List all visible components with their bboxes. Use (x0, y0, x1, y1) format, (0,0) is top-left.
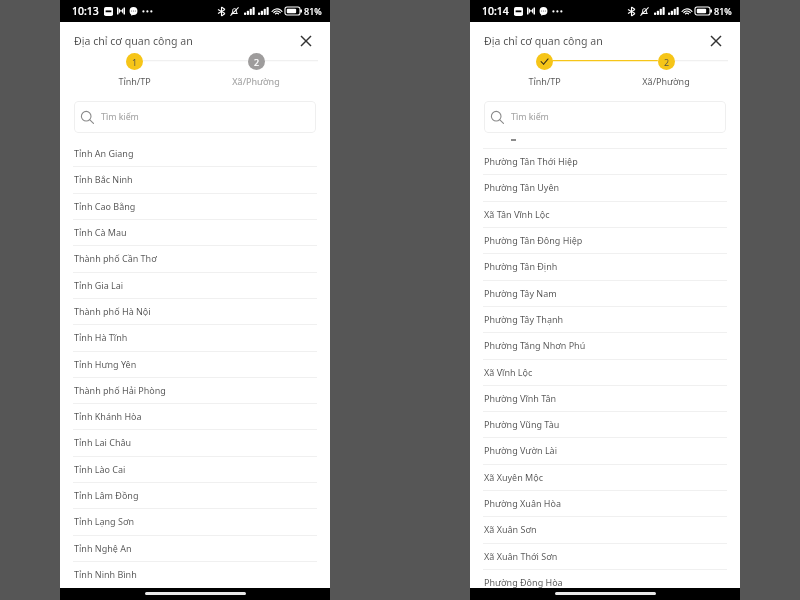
button[interactable]: Tỉnh Ninh Bình (60, 561, 330, 587)
button[interactable]: Xã Xuân Thới Sơn (470, 543, 740, 569)
button[interactable]: Phường Tây Nam (470, 280, 740, 306)
button[interactable]: Tỉnh Lạng Sơn (60, 508, 330, 534)
staticText: Địa chỉ cơ quan công an (74, 34, 193, 48)
staticText: Xã Tân Vĩnh Lộc (484, 208, 550, 220)
button[interactable]: Thành phố Hải Phòng (60, 377, 330, 403)
button[interactable]: Tỉnh Cà Mau (60, 219, 330, 245)
button[interactable]: Phường Tân Phú (470, 138, 740, 148)
staticText: Tìm kiếm (101, 111, 139, 123)
staticText: Xã Xuân Sơn (484, 523, 537, 535)
button[interactable]: Tỉnh Lâm Đồng (60, 482, 330, 508)
staticText: Tỉnh Nghệ An (74, 542, 132, 554)
staticText: Tỉnh Lạng Sơn (74, 515, 135, 527)
staticText: Phường Tân Thới Hiệp (484, 155, 578, 167)
staticText: Tỉnh Ninh Bình (74, 568, 137, 580)
staticText: Xã/Phường (642, 75, 690, 87)
button[interactable]: Tỉnh Hà Tĩnh (60, 324, 330, 350)
staticText: 81% (714, 5, 732, 17)
staticText: Thành phố Hải Phòng (74, 384, 166, 396)
button[interactable]: 2 (628, 53, 704, 87)
staticText: Tỉnh Gia Lai (74, 279, 124, 291)
staticText: 1 (132, 56, 138, 68)
staticText: Tỉnh/TP (118, 75, 151, 87)
button[interactable]: Phường Xuân Hòa (470, 490, 740, 516)
button[interactable]: Xã Tân Vĩnh Lộc (470, 201, 740, 227)
staticText: Tìm kiếm (511, 111, 549, 123)
staticText: Xã Xuân Thới Sơn (484, 550, 558, 562)
button[interactable]: Tỉnh Khánh Hòa (60, 403, 330, 429)
button[interactable]: 1 (96, 53, 172, 87)
staticText: Thành phố Hà Nội (74, 305, 151, 317)
button[interactable]: Tìm kiếm (484, 101, 726, 133)
button[interactable]: Phường Tân Định (470, 253, 740, 279)
button[interactable]: Tỉnh Nghệ An (60, 535, 330, 561)
button[interactable]: Close (706, 31, 726, 51)
staticText: Phường Vườn Lài (484, 444, 557, 456)
button[interactable]: Phường Vĩnh Tân (470, 385, 740, 411)
button[interactable]: Phường Tây Thạnh (470, 306, 740, 332)
button[interactable]: Phường Tân Đông Hiệp (470, 227, 740, 253)
button[interactable]: Close (296, 31, 316, 51)
staticText: Tỉnh Lâm Đồng (74, 489, 139, 501)
staticText: Tỉnh Cà Mau (74, 226, 127, 238)
staticText: Tỉnh Hà Tĩnh (74, 331, 128, 343)
button[interactable]: Xã Vĩnh Lộc (470, 359, 740, 385)
button[interactable]: Tỉnh Cao Bằng (60, 193, 330, 219)
staticText: 81% (304, 5, 322, 17)
staticText: Xã/Phường (232, 75, 280, 87)
staticText: Phường Tây Nam (484, 287, 557, 299)
staticText: Thành phố Cần Thơ (74, 252, 157, 264)
staticText: Phường Tây Thạnh (484, 313, 564, 325)
button[interactable]: Xã Xuyên Mộc (470, 464, 740, 490)
button[interactable]: Xã Xuân Sơn (470, 516, 740, 542)
button[interactable]: Tỉnh Lai Châu (60, 429, 330, 455)
staticText: 10:14 (482, 4, 509, 18)
button[interactable]: Tỉnh An Giang (60, 140, 330, 166)
button[interactable]: Thành phố Hà Nội (60, 298, 330, 324)
button[interactable]: Tỉnh Lào Cai (60, 456, 330, 482)
staticText: Phường Đông Hòa (484, 576, 563, 588)
staticText: Tỉnh Bắc Ninh (74, 173, 133, 185)
staticText: Tỉnh Cao Bằng (74, 200, 136, 212)
staticText: Phường Vĩnh Tân (484, 392, 557, 404)
staticText: 2 (254, 56, 260, 68)
staticText: Tỉnh Lào Cai (74, 463, 126, 475)
button[interactable]: Tìm kiếm (74, 101, 316, 133)
staticText: 10:13 (72, 4, 99, 18)
staticText: Tỉnh Khánh Hòa (74, 410, 142, 422)
button[interactable]: Phường Tân Uyên (470, 174, 740, 200)
button[interactable]: 2 (218, 53, 294, 87)
button[interactable]: Tỉnh Gia Lai (60, 272, 330, 298)
staticText: Tỉnh Hưng Yên (74, 358, 137, 370)
staticText: Phường Tân Định (484, 260, 558, 272)
staticText: Phường Tân Uyên (484, 181, 560, 193)
button[interactable]: Phường Tăng Nhơn Phú (470, 332, 740, 358)
button[interactable]: Phường Vũng Tàu (470, 411, 740, 437)
button[interactable]: Phường Tân Thới Hiệp (470, 148, 740, 174)
staticText: 2 (664, 56, 670, 68)
staticText: Địa chỉ cơ quan công an (484, 34, 603, 48)
button[interactable]: Thành phố Cần Thơ (60, 245, 330, 271)
staticText: Xã Vĩnh Lộc (484, 366, 533, 378)
button[interactable]: Tỉnh/TP (506, 53, 582, 87)
staticText: Phường Tăng Nhơn Phú (484, 339, 586, 351)
staticText: Phường Tân Đông Hiệp (484, 234, 583, 246)
staticText: Tỉnh Lai Châu (74, 436, 132, 448)
staticText: Xã Xuyên Mộc (484, 471, 543, 483)
button[interactable]: Tỉnh Bắc Ninh (60, 166, 330, 192)
button[interactable]: Phường Đông Hòa (470, 569, 740, 588)
staticText: Phường Vũng Tàu (484, 418, 560, 430)
staticText: Tỉnh An Giang (74, 147, 134, 159)
staticText: Tỉnh/TP (528, 75, 561, 87)
button[interactable]: Tỉnh Hưng Yên (60, 351, 330, 377)
button[interactable]: Phường Vườn Lài (470, 437, 740, 463)
staticText: Phường Xuân Hòa (484, 497, 562, 509)
